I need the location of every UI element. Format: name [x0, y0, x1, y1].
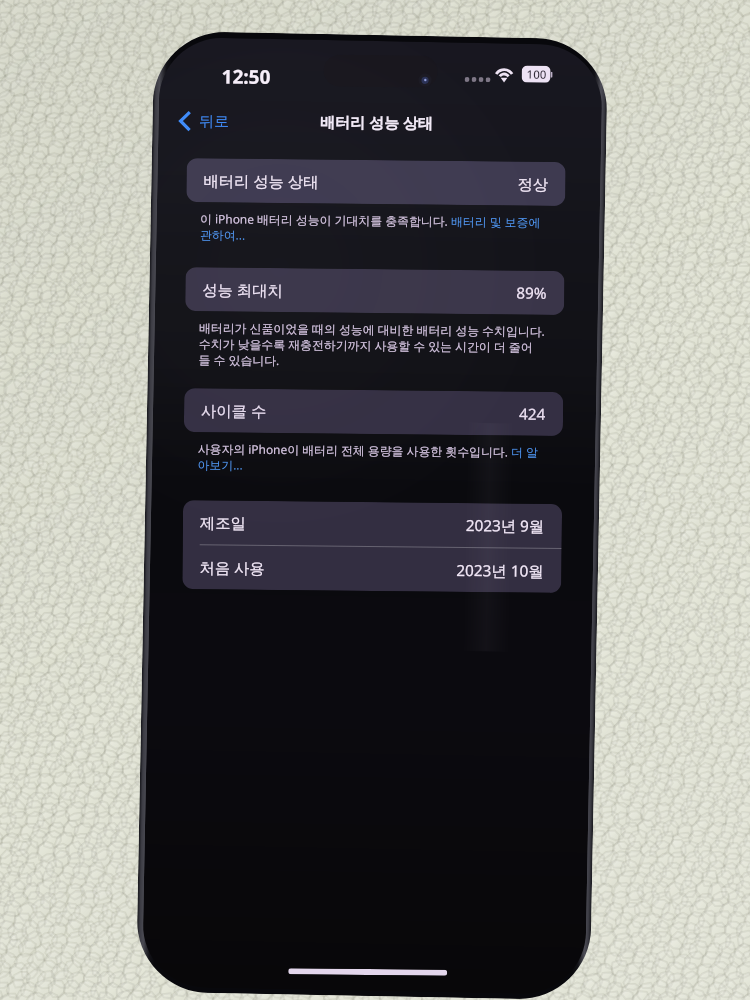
staticText: 뒤로	[199, 112, 229, 132]
button[interactable]: 성능 최대치	[185, 264, 565, 318]
staticText: 정상	[517, 174, 549, 194]
staticText: 사용자의 iPhone이 배터리 전체 용량을 사용한 횟수입니다. 더 알	[197, 437, 539, 463]
other: Back	[179, 111, 191, 131]
staticText: 아보기...	[197, 456, 244, 473]
staticText: 수치가 낮을수록 재충전하기까지 사용할 수 있는 시간이 더 줄어	[199, 332, 533, 358]
staticText: 배터리 성능 상태	[203, 169, 320, 193]
staticText: 배터리 성능 상태	[320, 110, 433, 134]
staticText: 89%	[516, 282, 548, 304]
staticText: 2023년 9월	[466, 514, 545, 537]
staticText: 12:50	[221, 63, 271, 90]
staticText: 제조일	[200, 513, 246, 533]
staticText: 관하여...	[200, 226, 246, 243]
staticText: 처음 사용	[199, 557, 266, 579]
button[interactable]: 사이클 수	[183, 385, 564, 439]
staticText: 들 수 있습니다.	[198, 350, 280, 369]
staticText: 2023년 10월	[456, 559, 545, 583]
staticText: 100	[526, 66, 547, 83]
staticText: 424	[519, 403, 546, 425]
button[interactable]: Back	[175, 106, 233, 136]
staticText: 사이클 수	[201, 400, 267, 422]
button[interactable]: 배터리 성능 상태	[186, 155, 566, 209]
staticText: 이 iPhone 배터리 성능이 기대치를 충족합니다. 배터리 및 보증에	[200, 207, 541, 233]
staticText: 성능 최대치	[202, 278, 284, 302]
button[interactable]: 처음 사용	[182, 542, 562, 596]
staticText: 배터리가 신품이었을 때의 성능에 대비한 배터리 성능 수치입니다.	[199, 316, 545, 342]
button[interactable]: 제조일	[182, 497, 562, 551]
